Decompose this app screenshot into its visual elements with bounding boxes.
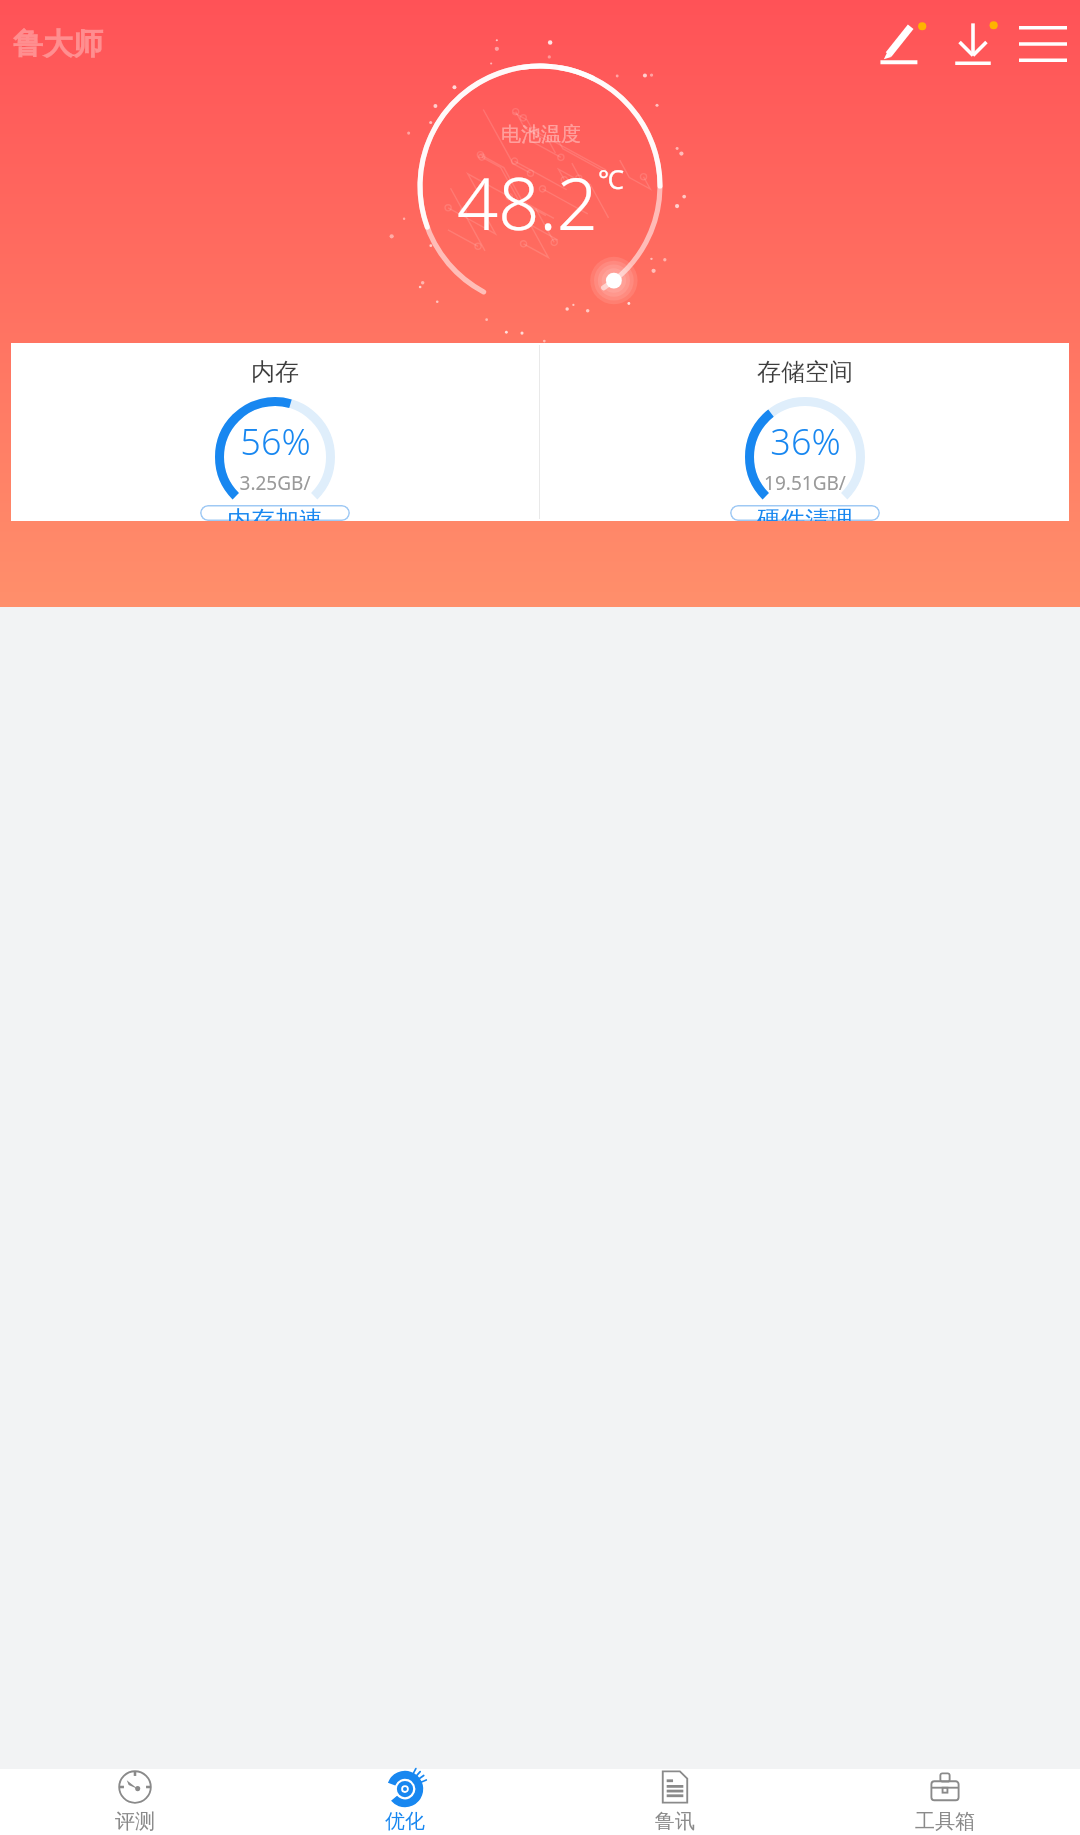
staticText: 内存加速: [227, 505, 323, 521]
button[interactable]: 优化: [270, 1769, 540, 1835]
staticText: 36%: [770, 417, 841, 466]
staticText: 电池温度: [501, 122, 581, 147]
staticText: 19.51GB/53.46GB: [745, 470, 865, 497]
staticText: 存储空间: [757, 357, 853, 387]
button[interactable]: 评测: [0, 1769, 270, 1835]
staticText: 优化: [385, 1809, 425, 1834]
button[interactable]: 硬件清理: [730, 505, 880, 521]
button[interactable]: Edit: [872, 13, 934, 75]
staticText: 鲁大师: [13, 25, 103, 63]
button[interactable]: Menu: [1012, 13, 1074, 75]
button[interactable]: 工具箱: [810, 1769, 1080, 1835]
staticText: 内存: [251, 357, 299, 387]
staticText: 鲁讯: [655, 1809, 695, 1834]
button[interactable]: 鲁讯: [540, 1769, 810, 1835]
staticText: 48.2: [457, 153, 598, 251]
button[interactable]: 内存加速: [200, 505, 350, 521]
staticText: ℃: [598, 161, 624, 196]
staticText: 评测: [115, 1809, 155, 1834]
button[interactable]: Downloads: [942, 13, 1004, 75]
staticText: 56%: [240, 417, 311, 466]
staticText: 硬件清理: [757, 505, 853, 521]
staticText: 工具箱: [915, 1809, 975, 1834]
staticText: 3.25GB/5.74GB: [215, 470, 335, 497]
